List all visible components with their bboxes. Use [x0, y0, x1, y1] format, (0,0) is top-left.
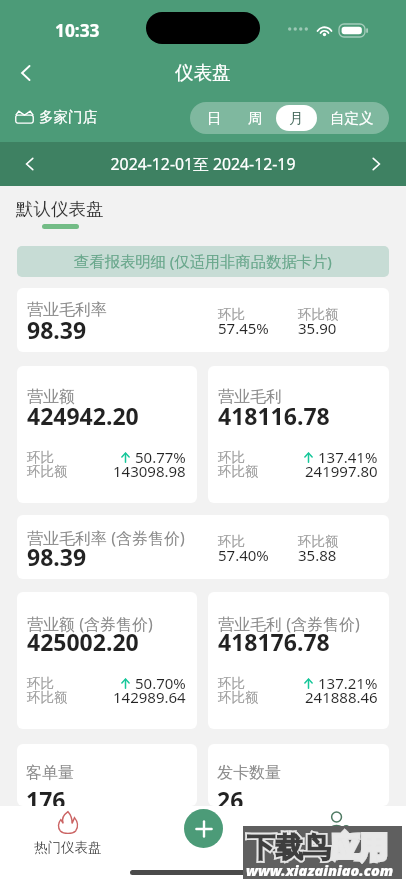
staticText: 营业毛利 [218, 387, 282, 407]
button[interactable]: 营业额 [17, 366, 197, 503]
staticText: 418176.78 [218, 626, 330, 657]
staticText: 57.45% [218, 318, 269, 338]
staticText: 35.88 [298, 545, 337, 565]
staticText: 营业额 [27, 387, 75, 407]
staticText: 下载鸟 [247, 830, 331, 865]
staticText: 环比额 [218, 689, 259, 706]
staticText: 98.39 [27, 541, 87, 572]
staticText: 营业毛利率 (含券售价) [27, 527, 185, 549]
staticText: 营业毛利率 [27, 300, 107, 320]
button[interactable]: Add [184, 809, 223, 848]
staticText: 241888.46 [305, 687, 378, 707]
staticText: 环比 [218, 449, 245, 466]
staticText: 环比 [218, 533, 245, 550]
staticText: 查看报表明细 (仅适用非商品数据卡片) [74, 251, 332, 272]
staticText: 应用 [331, 830, 387, 865]
button[interactable]: Back [6, 53, 46, 93]
staticText: 仪表盘 [175, 61, 231, 84]
staticText: 环比 [218, 675, 245, 692]
staticText: 环比额 [27, 463, 68, 480]
staticText: 周 [248, 109, 263, 127]
staticText: 57.40% [218, 545, 269, 565]
staticText: 多家门店 [39, 108, 97, 126]
button[interactable]: 客单量 [17, 744, 197, 806]
button[interactable]: 营业毛利 (含券售价) [208, 592, 389, 729]
staticText: 142989.64 [113, 687, 186, 707]
staticText: 50.70% [135, 673, 186, 693]
staticText: 客单量 [26, 763, 74, 783]
staticText: 137.21% [318, 673, 378, 693]
staticText: 424942.20 [27, 400, 139, 431]
staticText: 143098.98 [113, 461, 186, 481]
button[interactable]: 周 [235, 105, 276, 131]
staticText: 425002.20 [27, 626, 139, 657]
button[interactable]: 营业毛利率 (含券售价) [17, 515, 389, 579]
button[interactable]: 自定义 [317, 105, 386, 131]
staticText: 137.41% [318, 447, 378, 467]
staticText: 26 [217, 784, 244, 806]
staticText: 环比额 [298, 533, 339, 550]
staticText: 2024-12-01至 2024-12-19 [60, 153, 346, 175]
button[interactable]: 营业额 (含券售价) [17, 592, 197, 729]
staticText: 241997.80 [305, 461, 378, 481]
staticText: 热门仪表盘 [34, 839, 102, 856]
staticText: 35.90 [298, 318, 337, 338]
staticText: 发卡数量 [217, 763, 281, 783]
button[interactable]: Next period [346, 142, 406, 186]
button[interactable]: 营业毛利率 [17, 288, 389, 352]
button[interactable]: 我的 [304, 810, 372, 856]
staticText: 默认仪表盘 [16, 198, 104, 220]
staticText: 10:33 [55, 19, 100, 43]
staticText: 176 [26, 784, 66, 806]
button[interactable]: 默认仪表盘 [16, 198, 104, 229]
staticText: 营业毛利 (含券售价) [218, 613, 360, 635]
button[interactable]: Previous period [0, 142, 60, 186]
staticText: 环比额 [218, 463, 259, 480]
staticText: 下载鸟应用 [247, 830, 387, 865]
staticText: 环比额 [298, 306, 339, 323]
button[interactable]: 热门仪表盘 [34, 810, 102, 856]
button[interactable]: 查看报表明细 (仅适用非商品数据卡片) [17, 246, 389, 277]
button[interactable]: 发卡数量 [208, 744, 389, 806]
button[interactable]: 营业毛利 [208, 366, 389, 503]
staticText: 营业额 (含券售价) [27, 613, 153, 635]
staticText: 环比 [218, 306, 245, 323]
staticText: 环比 [27, 449, 54, 466]
staticText: 环比 [27, 675, 54, 692]
button[interactable]: 日 [193, 105, 235, 131]
staticText: 日 [207, 109, 222, 127]
staticText: 98.39 [27, 314, 87, 345]
button[interactable]: 月 [276, 105, 317, 131]
button[interactable]: 多家门店 [15, 108, 97, 126]
staticText: 环比额 [27, 689, 68, 706]
staticText: www.xiazainiao.com [246, 860, 394, 880]
staticText: 自定义 [330, 109, 374, 127]
staticText: 50.77% [135, 447, 186, 467]
staticText: 我的 [325, 839, 352, 856]
staticText: 418116.78 [218, 400, 330, 431]
staticText: 月 [289, 109, 304, 127]
